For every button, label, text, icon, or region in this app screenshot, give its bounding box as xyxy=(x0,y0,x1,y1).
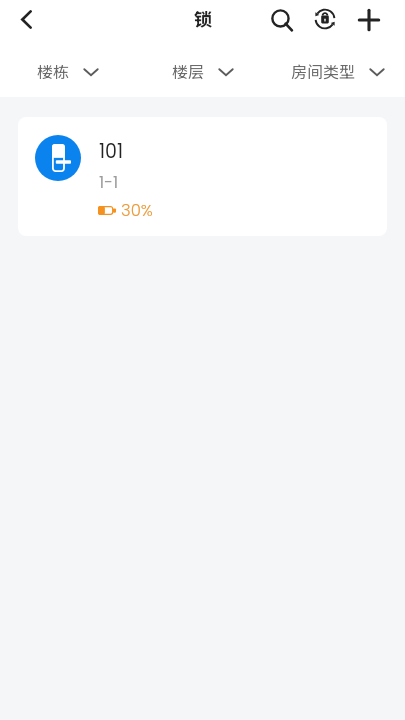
button[interactable]: Add lock xyxy=(351,2,387,38)
button[interactable]: 房间类型 xyxy=(270,40,405,97)
staticText: 楼层 xyxy=(172,59,205,82)
staticText: 101 xyxy=(99,138,124,165)
button[interactable]: Search xyxy=(264,2,300,38)
staticText: 锁 xyxy=(194,5,212,31)
button[interactable]: 101 xyxy=(18,117,387,236)
staticText: 房间类型 xyxy=(291,59,356,82)
button[interactable]: 楼栋 xyxy=(0,40,135,97)
button[interactable]: 楼层 xyxy=(135,40,270,97)
button[interactable]: Back xyxy=(8,1,44,37)
staticText: 30% xyxy=(121,199,153,222)
staticText: 1-1 xyxy=(99,171,119,193)
staticText: 楼栋 xyxy=(37,59,70,82)
button[interactable]: Sync locks xyxy=(307,1,343,37)
